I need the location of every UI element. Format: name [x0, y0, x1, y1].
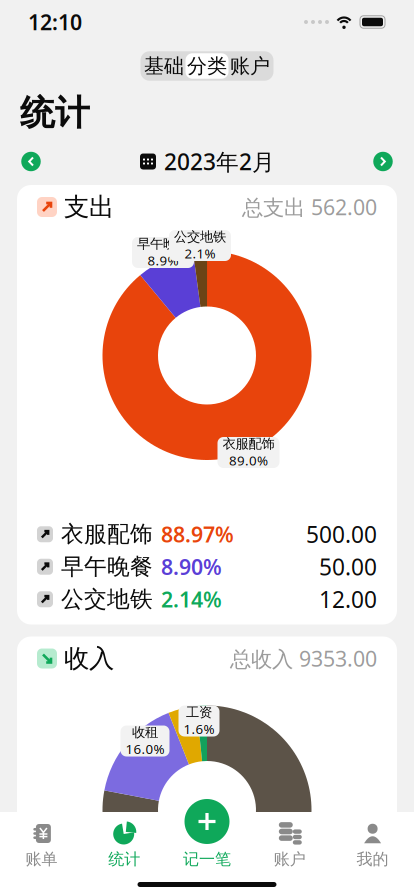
staticText: 2023年2月 — [164, 146, 275, 177]
staticText: 基础 — [144, 53, 184, 79]
button[interactable]: Add record — [182, 796, 232, 846]
staticText: 总收入 9353.00 — [230, 644, 377, 673]
staticText: 16.0% — [125, 740, 164, 758]
staticText: 支出 — [64, 191, 114, 223]
staticText: 统计 — [20, 91, 90, 135]
button[interactable]: 统计 — [83, 823, 166, 873]
staticText: 早午晚餐 — [61, 552, 153, 581]
staticText: 89.0% — [229, 451, 268, 469]
staticText: 8.9% — [147, 251, 178, 269]
button[interactable]: 早午晚餐 — [37, 550, 377, 583]
staticText: 收租 — [132, 724, 158, 741]
button[interactable]: 衣服配饰 — [37, 518, 377, 550]
staticText: 2.1% — [184, 244, 215, 262]
button[interactable]: 公交地铁 — [37, 583, 377, 615]
button[interactable]: 记一笔 — [166, 823, 248, 873]
button[interactable]: 我的 — [331, 823, 414, 873]
button[interactable]: 基础 — [142, 53, 185, 79]
staticText: 8.90% — [161, 553, 222, 581]
staticText: 2.14% — [161, 585, 222, 613]
staticText: 记一笔 — [183, 849, 231, 869]
staticText: 统计 — [108, 849, 140, 869]
button[interactable]: 账户 — [228, 53, 271, 79]
staticText: 500.00 — [306, 519, 377, 549]
staticText: 总支出 562.00 — [242, 192, 377, 222]
staticText: 12.00 — [319, 584, 377, 614]
staticText: 收入 — [64, 642, 114, 674]
staticText: 早午晚餐 — [137, 235, 189, 252]
button[interactable]: Previous month — [17, 147, 45, 175]
staticText: 分类 — [187, 53, 227, 79]
staticText: 公交地铁 — [61, 585, 153, 614]
button[interactable]: 分类 — [185, 53, 228, 79]
staticText: 公交地铁 — [174, 228, 226, 245]
staticText: 12:10 — [28, 8, 82, 36]
staticText: 账单 — [25, 849, 57, 869]
staticText: 账户 — [274, 849, 306, 869]
staticText: 工资 — [186, 704, 212, 721]
staticText: 1.6% — [183, 720, 214, 738]
staticText: 50.00 — [319, 552, 377, 582]
staticText: 衣服配饰 — [61, 520, 153, 549]
staticText: 我的 — [357, 849, 389, 869]
button[interactable]: 账户 — [248, 823, 331, 873]
button[interactable]: 账单 — [0, 823, 83, 873]
button[interactable]: Next month — [369, 147, 397, 175]
staticText: 衣服配饰 — [222, 435, 274, 452]
staticText: 88.97% — [161, 520, 234, 548]
staticText: 账户 — [230, 53, 270, 79]
